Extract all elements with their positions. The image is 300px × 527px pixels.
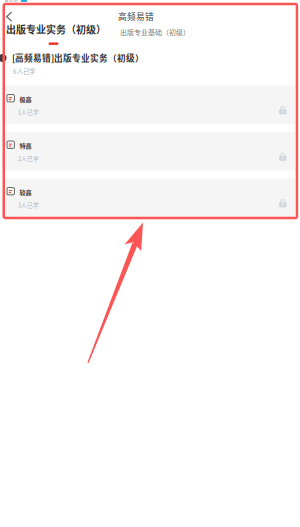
button[interactable]: 较高 xyxy=(5,178,295,217)
staticText: 极高 xyxy=(19,95,31,104)
staticText: [高频易错]出版专业实务（初级） xyxy=(12,51,144,64)
staticText: 1人已学 xyxy=(18,108,39,116)
staticText: 6人已学 xyxy=(13,66,35,76)
button[interactable]: 出版专业实务（初级） xyxy=(6,22,106,45)
staticText: 高频易错 xyxy=(118,10,154,22)
staticText: 较高 xyxy=(19,188,31,197)
button[interactable]: Back xyxy=(2,7,22,27)
button[interactable]: 特高 xyxy=(5,132,295,170)
button[interactable]: 极高 xyxy=(5,85,295,124)
staticText: 出版专业实务（初级） xyxy=(6,22,106,36)
staticText: 3人已学 xyxy=(18,201,39,209)
staticText: 出版专业基础（初级） xyxy=(120,27,190,37)
staticText: 2人已学 xyxy=(18,154,39,163)
staticText: 特高 xyxy=(19,141,31,150)
button[interactable]: 出版专业基础（初级） xyxy=(118,24,192,40)
